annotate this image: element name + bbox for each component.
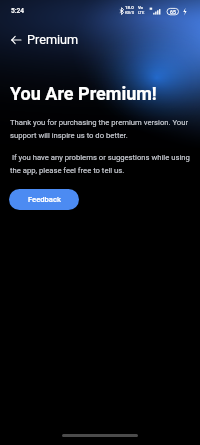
button[interactable]: Feedback <box>9 189 79 210</box>
staticText: 18.0 <box>125 5 134 10</box>
staticText: You Are Premium! <box>10 83 157 104</box>
staticText: 65 <box>170 9 176 15</box>
staticText: Vo <box>138 5 144 10</box>
staticText: Thank you for purchasing the premium ver… <box>10 118 192 140</box>
staticText: 5:24 <box>11 7 24 15</box>
staticText: LTE <box>138 10 145 15</box>
staticText: KB/S <box>125 10 135 15</box>
button[interactable]: Back <box>5 29 26 50</box>
staticText: Feedback <box>28 195 61 204</box>
staticText: Premium <box>27 32 79 47</box>
staticText: If you have any problems or suggestions … <box>10 153 192 175</box>
